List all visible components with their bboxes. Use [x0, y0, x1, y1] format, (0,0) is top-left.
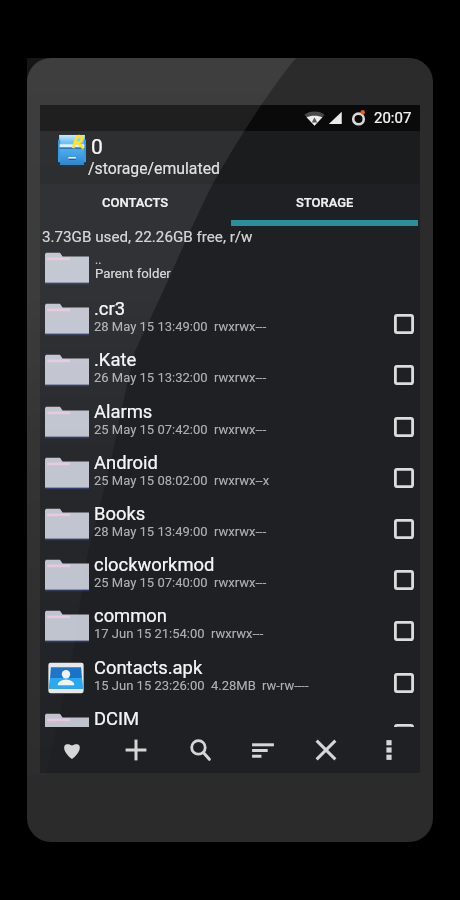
button[interactable]: clockworkmod	[40, 554, 420, 605]
button[interactable]: CONTACTS	[40, 184, 230, 220]
staticText: 25 May 15 08:02:00	[94, 473, 208, 488]
staticText: 15 Jun 15 23:26:00 4.28MB	[94, 678, 256, 693]
button[interactable]: STORAGE	[230, 184, 420, 220]
staticText: clockworkmod	[94, 554, 215, 576]
button[interactable]: Contacts.apk	[40, 657, 420, 708]
button[interactable]: ..	[40, 250, 420, 298]
button[interactable]: New	[104, 727, 168, 773]
staticText: Android	[94, 452, 158, 474]
staticText: 20:07	[374, 109, 412, 127]
button[interactable]: Select common	[385, 605, 420, 656]
staticText: Books	[94, 503, 146, 525]
button[interactable]: Select clockworkmod	[385, 554, 420, 605]
staticText: 28 May 15 13:49:00	[94, 319, 208, 334]
staticText: rwxrwx---	[214, 524, 267, 539]
button[interactable]: Select DCIM	[385, 708, 420, 727]
staticText: 17 Jun 15 21:54:00	[94, 626, 205, 641]
staticText: rw-rw----	[262, 678, 309, 693]
button[interactable]: Select .Kate	[385, 349, 420, 400]
staticText: rwxrwx---	[214, 575, 267, 590]
staticText: Contacts.apk	[94, 657, 203, 679]
staticText: 3.73GB used, 22.26GB free, r/w	[42, 228, 253, 246]
staticText: 28 May 15 13:49:00	[94, 524, 208, 539]
button[interactable]: Select Books	[385, 503, 420, 554]
button[interactable]: .Kate	[40, 349, 420, 400]
button[interactable]: Select .cr3	[385, 298, 420, 349]
button[interactable]: common	[40, 605, 420, 656]
staticText: 25 May 15 07:42:00	[94, 422, 208, 437]
button[interactable]: Alarms	[40, 401, 420, 452]
staticText: rwxrwx---	[214, 319, 267, 334]
staticText: rwxrwx---	[214, 422, 267, 437]
staticText: Alarms	[94, 401, 153, 423]
button[interactable]: Close	[294, 727, 357, 773]
staticText: rwxrwx--x	[214, 473, 270, 488]
staticText: Parent folder	[95, 266, 171, 281]
button[interactable]: Search	[168, 727, 231, 773]
button[interactable]: Select Contacts.apk	[385, 657, 420, 708]
staticText: .Kate	[94, 349, 137, 371]
staticText: CONTACTS	[102, 195, 169, 210]
staticText: common	[94, 605, 168, 627]
button[interactable]: Favorites	[40, 727, 104, 773]
staticText: .cr3	[94, 298, 126, 320]
staticText: DCIM	[94, 708, 140, 727]
staticText: rwxrwx---	[211, 626, 264, 641]
staticText: 25 May 15 07:40:00	[94, 575, 208, 590]
staticText: /storage/emulated	[88, 159, 220, 178]
staticText: 26 May 15 13:32:00	[94, 370, 208, 385]
button[interactable]: Select Android	[385, 452, 420, 503]
button[interactable]: Sort	[231, 727, 294, 773]
button[interactable]: More options	[357, 727, 420, 773]
button[interactable]: .cr3	[40, 298, 420, 349]
button[interactable]: Android	[40, 452, 420, 503]
staticText: ..	[95, 253, 102, 267]
staticText: STORAGE	[296, 195, 354, 210]
staticText: rwxrwx---	[214, 370, 267, 385]
button[interactable]: Select Alarms	[385, 401, 420, 452]
staticText: 0	[91, 135, 103, 160]
button[interactable]: DCIM	[40, 708, 420, 727]
button[interactable]: Books	[40, 503, 420, 554]
